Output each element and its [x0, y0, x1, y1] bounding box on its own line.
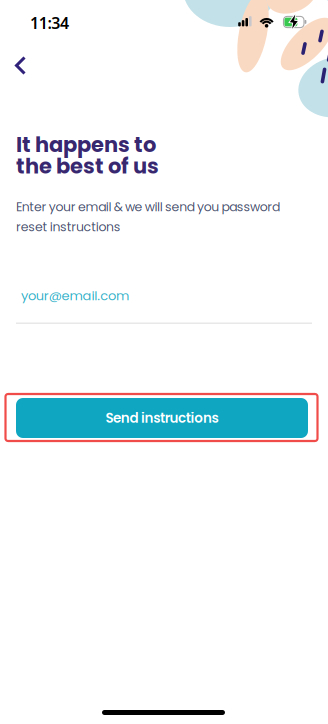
button[interactable]: Back: [0, 50, 44, 81]
button[interactable]: Email address: [16, 284, 312, 324]
staticText: Enter your email & we will send you pass…: [16, 198, 280, 216]
staticText: reset instructions: [16, 218, 121, 235]
staticText: 11:34: [30, 12, 69, 33]
staticText: your@email.com: [21, 286, 129, 305]
button[interactable]: Send instructions: [16, 398, 308, 438]
staticText: Send instructions: [105, 409, 219, 427]
staticText: the best of us: [16, 151, 159, 181]
staticText: It happens to: [16, 130, 156, 159]
